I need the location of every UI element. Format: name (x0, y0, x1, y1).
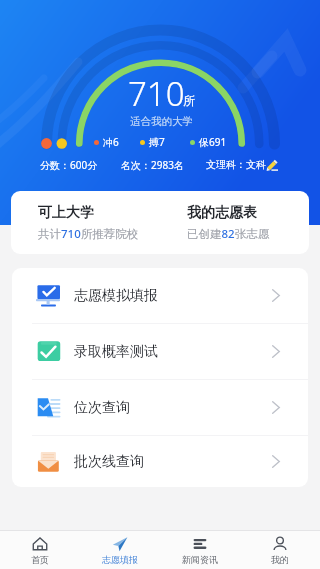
staticText: 志愿填报 (102, 554, 138, 565)
button[interactable]: 首页 (0, 531, 80, 569)
staticText: 所 (183, 93, 195, 108)
staticText: 名次：2983名 (121, 158, 184, 172)
staticText: 志愿模拟填报 (74, 287, 158, 305)
staticText: 录取概率测试 (74, 343, 158, 361)
staticText: 位次查询 (74, 399, 130, 417)
staticText: 首页 (31, 554, 49, 565)
button[interactable]: 我的 (240, 531, 320, 569)
staticText: 保691 (199, 135, 227, 149)
staticText: 文理科：文科 (206, 158, 266, 171)
button[interactable]: 新闻资讯 (160, 531, 240, 569)
staticText: 新闻资讯 (182, 554, 218, 565)
staticText: 分数：600分 (40, 158, 98, 172)
staticText: 可上大学 (38, 204, 94, 222)
staticText: 我的 (271, 554, 289, 565)
button[interactable]: 位次查询 (12, 380, 308, 435)
staticText: 已创建82张志愿 (187, 226, 270, 242)
staticText: 我的志愿表 (187, 204, 257, 222)
staticText: 批次线查询 (74, 453, 144, 471)
staticText: 适合我的大学 (130, 115, 193, 128)
button[interactable]: 可上大学 (11, 191, 160, 254)
staticText: 710 (128, 71, 185, 116)
button[interactable]: 批次线查询 (12, 436, 308, 487)
button[interactable]: 编辑成绩 (266, 159, 278, 171)
staticText: 冲6 (103, 135, 119, 149)
button[interactable]: 志愿模拟填报 (12, 268, 308, 323)
button[interactable]: 志愿填报 (80, 531, 160, 569)
button[interactable]: 我的志愿表 (160, 191, 309, 254)
staticText: 共计710所推荐院校 (38, 226, 139, 242)
staticText: 搏7 (149, 135, 165, 149)
button[interactable]: 录取概率测试 (12, 324, 308, 379)
